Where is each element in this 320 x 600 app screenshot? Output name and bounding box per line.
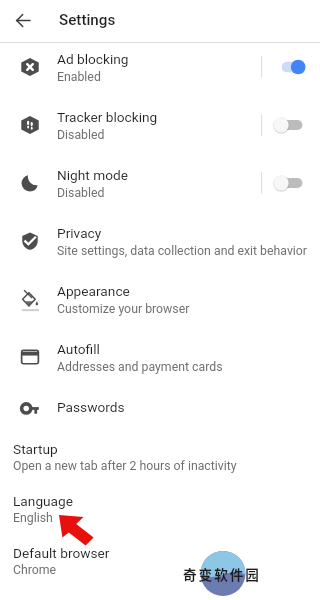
staticText: Site settings, data collection and exit …	[57, 244, 308, 258]
button[interactable]: Toggle off	[258, 111, 316, 139]
staticText: Autofill	[57, 341, 100, 357]
button[interactable]: Tracker blocking	[0, 99, 320, 157]
button[interactable]: Toggle on	[258, 53, 316, 81]
staticText: Language	[13, 493, 73, 509]
staticText: Chrome	[13, 563, 57, 577]
staticText: Ad blocking	[57, 51, 129, 67]
button[interactable]: Startup	[0, 436, 320, 487]
staticText: 奇变软件园	[183, 564, 261, 584]
staticText: Enabled	[57, 70, 101, 84]
staticText: Appearance	[57, 283, 130, 299]
button[interactable]: Appearance	[0, 273, 320, 331]
button[interactable]: Ad blocking	[0, 41, 320, 99]
button[interactable]: Toggle off	[258, 169, 316, 197]
button[interactable]: Autofill	[0, 331, 320, 389]
button[interactable]: Default browser	[0, 540, 320, 591]
staticText: Customize your browser	[57, 302, 190, 316]
staticText: Passwords	[57, 399, 125, 415]
button[interactable]: Night mode	[0, 157, 320, 215]
staticText: Settings	[59, 11, 116, 29]
button[interactable]: Language	[0, 488, 320, 539]
staticText: Tracker blocking	[57, 109, 158, 125]
staticText: Privacy	[57, 225, 102, 241]
staticText: Open a new tab after 2 hours of inactivi…	[13, 459, 237, 473]
staticText: Startup	[13, 441, 58, 457]
staticText: Disabled	[57, 186, 105, 200]
staticText: Disabled	[57, 128, 105, 142]
staticText: English	[13, 511, 53, 525]
button[interactable]: Back	[5, 2, 41, 38]
staticText: Default browser	[13, 545, 110, 561]
staticText: Night mode	[57, 167, 128, 183]
button[interactable]: Privacy	[0, 215, 320, 273]
staticText: Addresses and payment cards	[57, 360, 223, 374]
button[interactable]: Passwords	[0, 389, 320, 447]
